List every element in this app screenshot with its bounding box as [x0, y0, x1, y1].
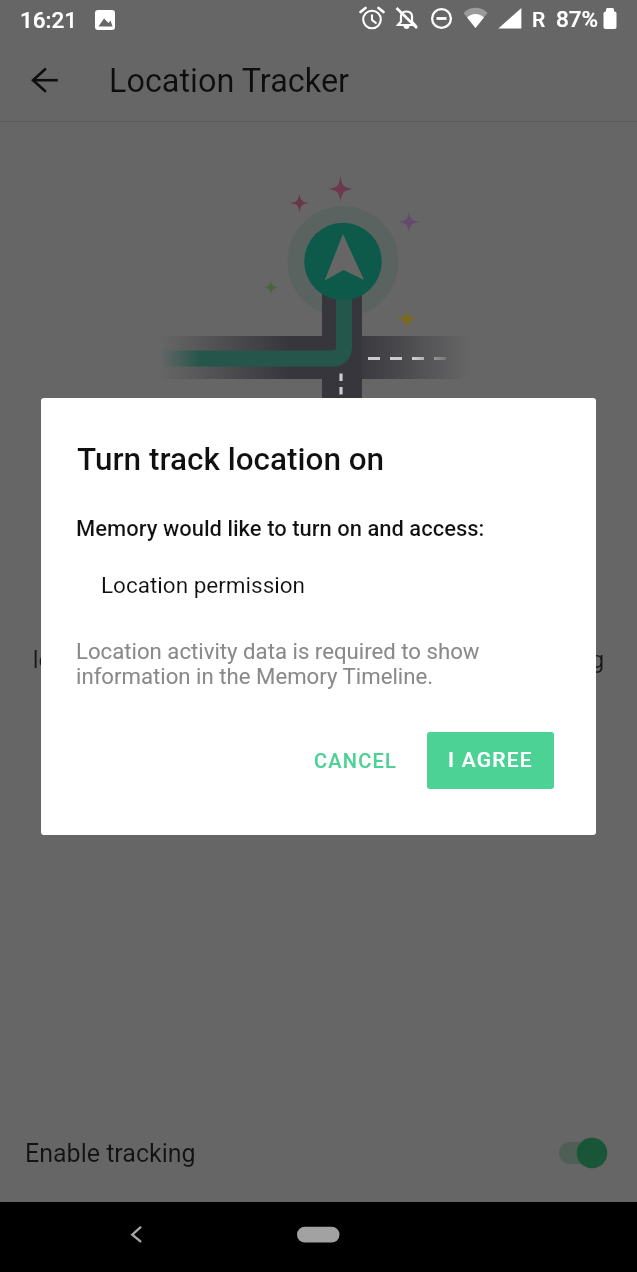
staticText: R — [532, 8, 546, 33]
staticText: Turn track location on — [77, 441, 385, 478]
staticText: Location permission — [101, 572, 305, 598]
button[interactable]: I AGREE — [427, 732, 554, 789]
button[interactable]: Back — [108, 1202, 168, 1272]
button[interactable]: Back — [19, 56, 71, 108]
button[interactable]: Enable tracking — [0, 1110, 637, 1196]
staticText: Location activity data is required to sh… — [76, 638, 480, 690]
staticText: location history to show your timeline, … — [0, 646, 637, 674]
button[interactable]: Home — [280, 1202, 360, 1272]
staticText: CANCEL — [314, 749, 398, 772]
staticText: Location Tracker — [109, 62, 350, 100]
staticText: Memory would like to turn on and access: — [76, 516, 485, 542]
staticText: 16:21 — [20, 7, 78, 33]
staticText: I AGREE — [448, 748, 533, 773]
staticText: 87% — [556, 6, 599, 32]
button[interactable]: CANCEL — [296, 731, 416, 789]
staticText: Enable tracking — [25, 1139, 196, 1168]
